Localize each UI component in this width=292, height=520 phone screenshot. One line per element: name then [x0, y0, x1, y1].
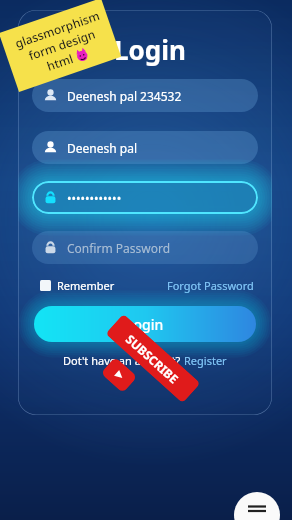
- staticText: glassmorphism: [12, 7, 102, 51]
- button[interactable]: Remember: [40, 278, 115, 293]
- staticText: ••••••••••••: [67, 190, 122, 206]
- button[interactable]: ••••••••••••: [32, 181, 258, 214]
- staticText: form design: [26, 25, 98, 63]
- button[interactable]: Confirm Password: [32, 231, 258, 264]
- button[interactable]: Register: [184, 353, 227, 368]
- staticText: Deenesh pal 234532: [67, 88, 182, 104]
- button[interactable]: Login: [34, 306, 256, 342]
- staticText: Dot't have an account?: [63, 353, 184, 368]
- staticText: Confirm Password: [67, 240, 171, 256]
- staticText: Deenesh pal: [67, 140, 137, 156]
- staticText: Login: [114, 32, 186, 67]
- button[interactable]: Menu: [234, 492, 280, 520]
- staticText: SUBSCRIBE: [123, 331, 183, 387]
- staticText: Login: [126, 315, 164, 334]
- button[interactable]: Deenesh pal 234532: [32, 79, 258, 112]
- button[interactable]: Subscribe: [105, 314, 201, 403]
- staticText: html: [45, 49, 78, 74]
- button[interactable]: Forgot Password: [167, 278, 254, 293]
- button[interactable]: Deenesh pal: [32, 131, 258, 164]
- staticText: Remember: [57, 278, 115, 293]
